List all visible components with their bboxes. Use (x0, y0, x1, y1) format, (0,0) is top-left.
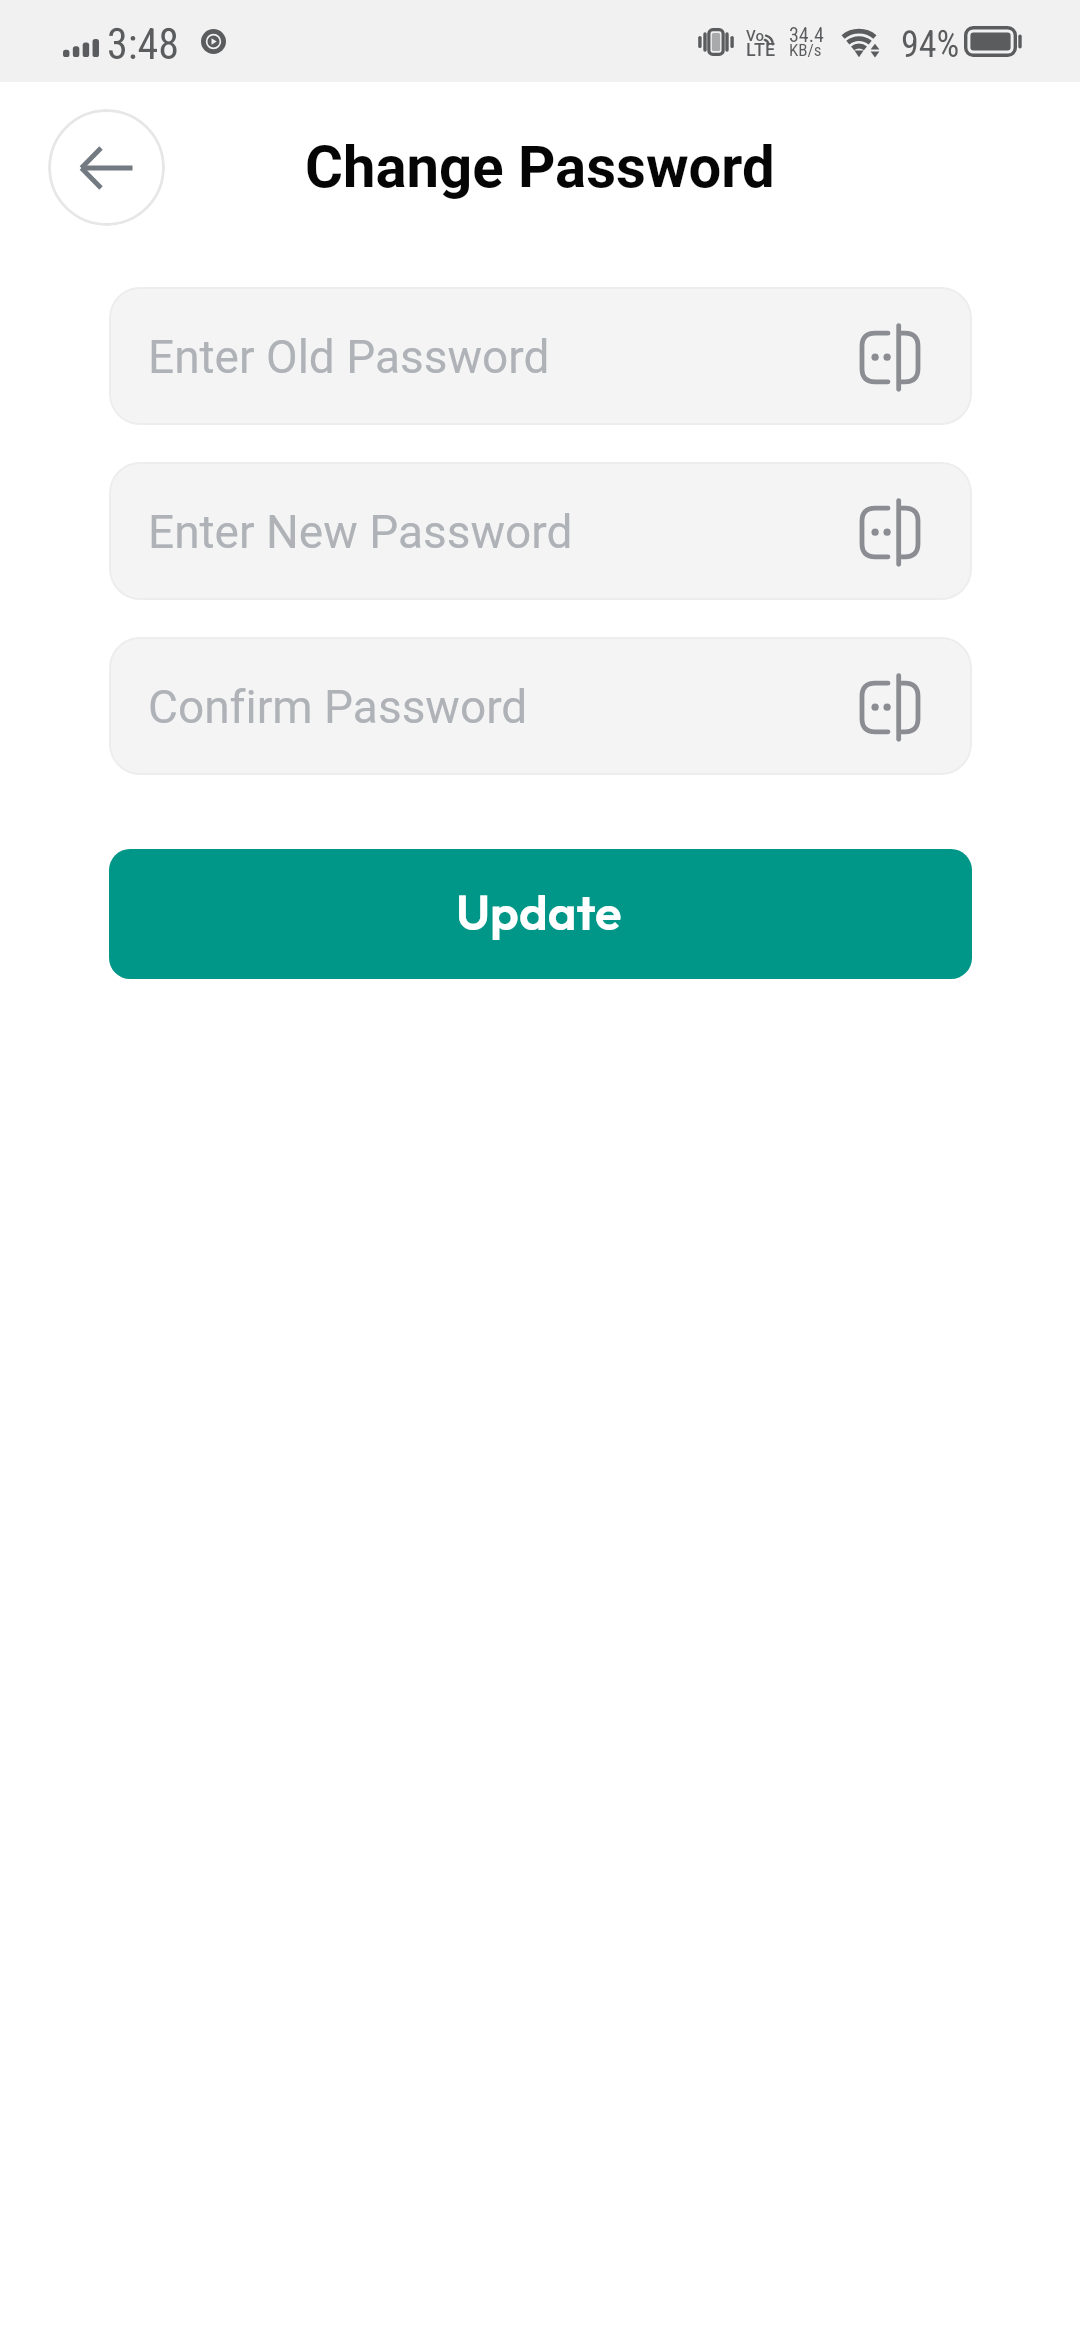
button[interactable]: Enter New Password (109, 462, 972, 600)
staticText: 34.4 (789, 23, 824, 46)
staticText: Vo (746, 27, 764, 45)
button[interactable]: Confirm Password (109, 637, 972, 775)
button[interactable]: Enter Old Password (109, 287, 972, 425)
staticText: 3:48 (107, 20, 180, 69)
staticText: Update (456, 881, 622, 943)
staticText: LTE (746, 39, 776, 60)
button[interactable]: Back (48, 109, 165, 226)
staticText: Enter New Password (148, 505, 573, 559)
button[interactable]: Update (109, 849, 972, 979)
staticText: Confirm Password (148, 680, 528, 734)
staticText: KB/s (789, 40, 822, 60)
staticText: 94% (901, 24, 960, 66)
staticText: Enter Old Password (148, 330, 550, 384)
staticText: Change Password (305, 133, 775, 201)
